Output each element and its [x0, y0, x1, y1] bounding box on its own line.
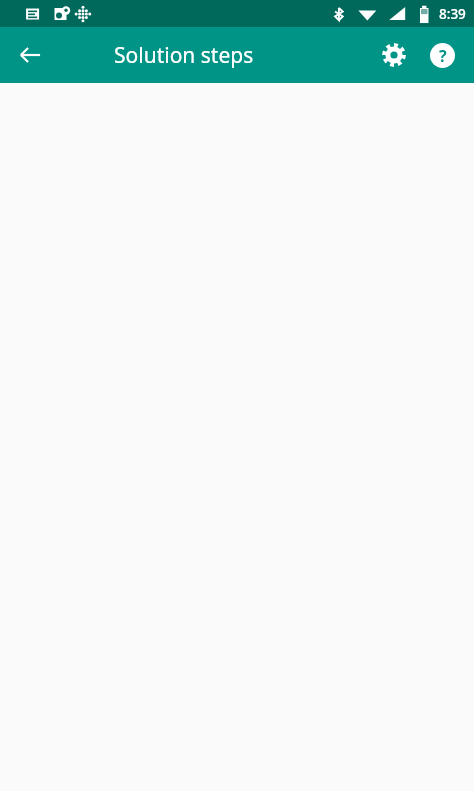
button[interactable]: Settings	[370, 31, 418, 79]
staticText: 8:39	[439, 5, 466, 23]
staticText: Solution steps	[114, 41, 254, 70]
button[interactable]: Back	[6, 31, 54, 79]
staticText: ?	[439, 45, 447, 67]
button[interactable]: Help	[418, 31, 466, 79]
